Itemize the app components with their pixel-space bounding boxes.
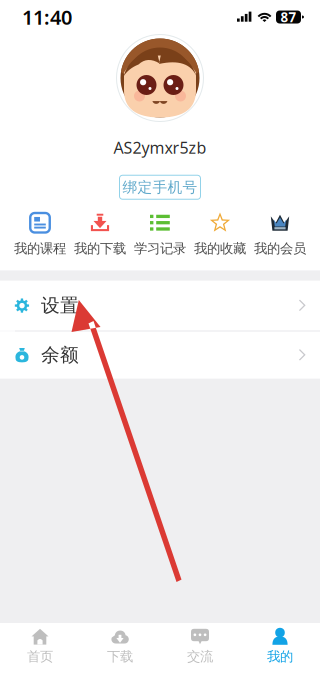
button[interactable]: 下载	[80, 622, 160, 670]
staticText: 11:40	[22, 4, 72, 30]
button[interactable]: 交流	[160, 622, 240, 670]
staticText: 首页	[27, 648, 53, 665]
button[interactable]: 我的会员	[250, 212, 310, 257]
button[interactable]: 我的课程	[10, 212, 70, 257]
staticText: 我的课程	[14, 240, 66, 257]
staticText: 余额	[41, 344, 79, 367]
button[interactable]: 我的下载	[70, 212, 130, 257]
staticText: 下载	[107, 648, 133, 665]
staticText: 87	[280, 8, 296, 26]
staticText: 交流	[187, 648, 213, 665]
button[interactable]: 学习记录	[130, 212, 190, 257]
staticText: 我的	[267, 648, 293, 665]
staticText: 我的收藏	[194, 240, 246, 257]
staticText: 学习记录	[134, 240, 186, 257]
button[interactable]: 我的收藏	[190, 212, 250, 257]
staticText: 设置	[41, 294, 79, 317]
staticText: 我的下载	[74, 240, 126, 257]
button[interactable]: 我的	[240, 622, 320, 670]
staticText: 我的会员	[254, 240, 306, 257]
button[interactable]: 绑定手机号	[119, 175, 200, 199]
button[interactable]: 设置	[0, 281, 320, 331]
button[interactable]: 首页	[0, 622, 80, 670]
staticText: 绑定手机号	[122, 178, 197, 196]
staticText: AS2ymxr5zb	[113, 137, 206, 158]
button[interactable]: 余额	[0, 332, 320, 379]
